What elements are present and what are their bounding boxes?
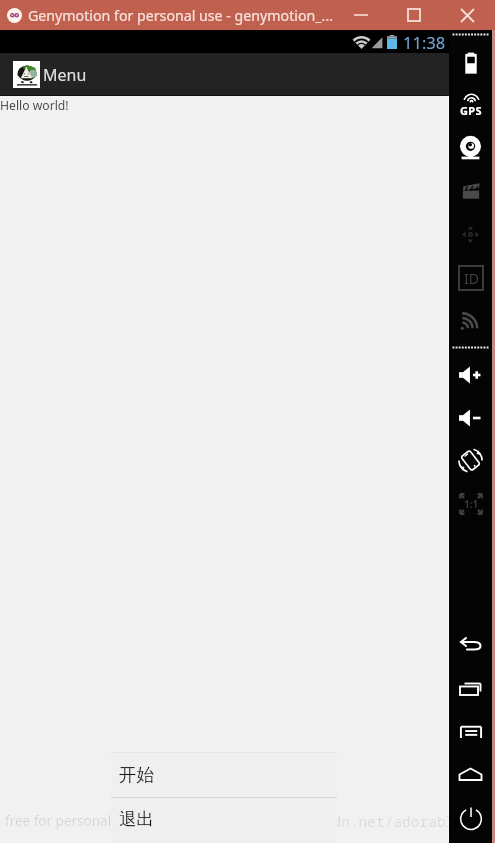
staticText: GPS bbox=[460, 103, 482, 118]
staticText: Menu bbox=[43, 64, 87, 86]
staticText: 退出 bbox=[119, 808, 154, 830]
staticText: Genymotion for personal use - genymotion… bbox=[28, 6, 333, 25]
staticText: Hello world! bbox=[0, 97, 69, 114]
button[interactable]: Volume down bbox=[449, 396, 492, 439]
button[interactable]: Dpad bbox=[449, 213, 492, 256]
button[interactable]: Battery bbox=[449, 41, 492, 84]
staticText: ID bbox=[464, 269, 479, 288]
button[interactable]: Home bbox=[449, 753, 492, 796]
button[interactable]: Power bbox=[449, 796, 492, 839]
button[interactable]: Camera bbox=[449, 127, 492, 170]
button[interactable]: Maximize bbox=[387, 0, 440, 30]
button[interactable]: Scale 1 to 1 bbox=[449, 482, 492, 525]
button[interactable]: Identifiers bbox=[449, 256, 492, 299]
button[interactable]: Menu bbox=[449, 710, 492, 753]
button[interactable]: Back bbox=[449, 624, 492, 667]
button[interactable]: 退出 bbox=[111, 798, 337, 843]
staticText: 1:1 bbox=[464, 497, 479, 511]
staticText: https://blog.csdn.net/adorable_ bbox=[202, 811, 472, 831]
button[interactable]: Minimize bbox=[334, 0, 387, 30]
button[interactable]: 开始 bbox=[111, 753, 337, 797]
staticText: 11:38 bbox=[403, 31, 446, 53]
button[interactable]: Network bbox=[449, 299, 492, 342]
button[interactable]: Volume up bbox=[449, 353, 492, 396]
button[interactable]: Video recording bbox=[449, 170, 492, 213]
button[interactable]: Rotate bbox=[449, 439, 492, 482]
button[interactable]: Close bbox=[440, 0, 495, 30]
staticText: 开始 bbox=[119, 764, 154, 786]
button[interactable]: Recent apps bbox=[449, 667, 492, 710]
button[interactable]: GPS bbox=[449, 84, 492, 127]
staticText: free for personal use bbox=[5, 812, 138, 830]
